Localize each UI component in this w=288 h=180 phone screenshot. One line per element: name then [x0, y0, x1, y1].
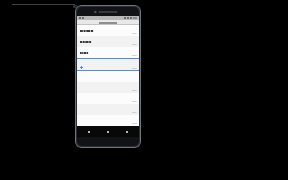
button[interactable]: Add attachment	[80, 66, 83, 69]
staticText: 0/50	[132, 122, 137, 125]
staticText: 0/50	[132, 100, 137, 103]
staticText: 0/50	[132, 32, 137, 35]
button[interactable]: Recent apps	[123, 128, 131, 136]
staticText: 0/50	[132, 111, 137, 114]
staticText: 0/50	[132, 43, 137, 46]
button[interactable]: 0/50	[77, 47, 139, 58]
staticText: 0/50	[132, 89, 137, 92]
button[interactable]: Home	[104, 128, 112, 136]
staticText: 0/50	[132, 54, 137, 57]
staticText: 0/50	[132, 67, 137, 70]
button[interactable]: 0/50	[77, 36, 139, 47]
button[interactable]: 0/50	[77, 115, 139, 126]
button[interactable]: Add attachment	[77, 58, 139, 71]
button[interactable]: 0/50	[77, 93, 139, 104]
button[interactable]: 0/50	[77, 25, 139, 36]
button[interactable]: Back	[85, 128, 93, 136]
